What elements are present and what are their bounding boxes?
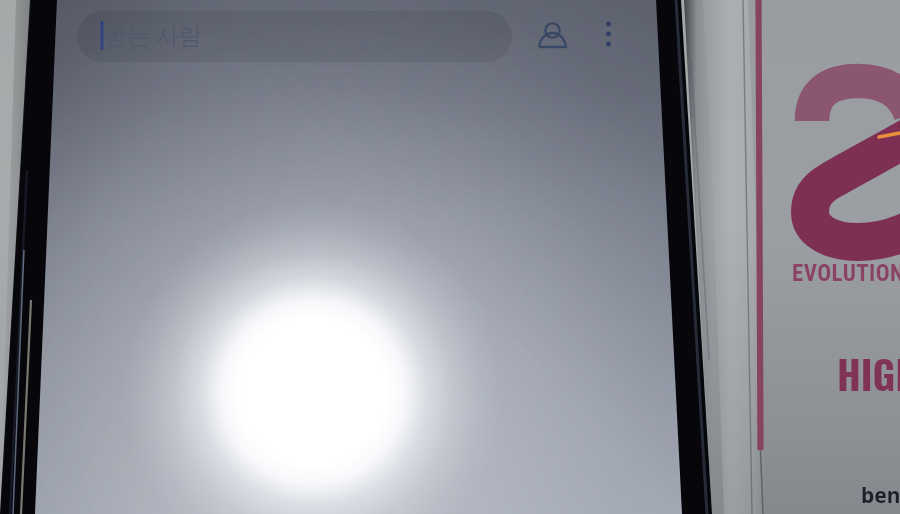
staticText: 받는 사람 — [104, 19, 202, 50]
button[interactable]: Select contacts — [531, 9, 575, 53]
button[interactable]: More options — [589, 9, 629, 49]
button[interactable] — [74, 9, 514, 63]
staticText: benef — [861, 481, 900, 510]
staticText: HIGH — [837, 344, 900, 402]
staticText: EVOLUTION — [792, 260, 900, 287]
